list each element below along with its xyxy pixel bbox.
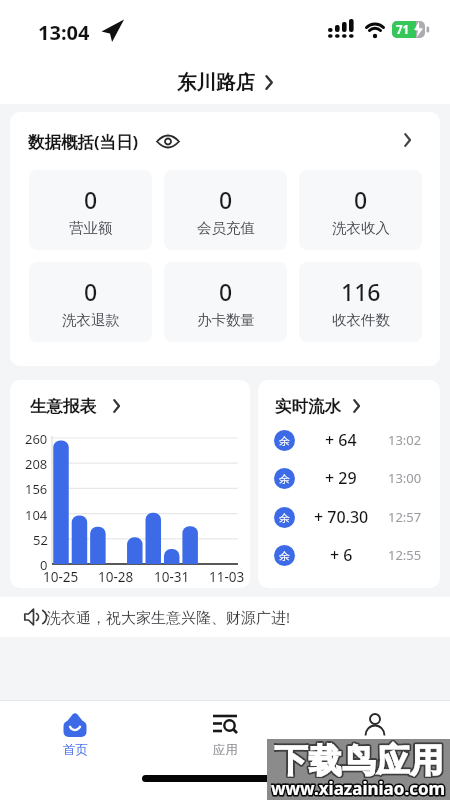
staticText: 洗衣退款 [62, 311, 120, 329]
staticText: 10-28 [98, 568, 134, 586]
button[interactable]: 116 [299, 262, 422, 342]
staticText: 11-03 [209, 568, 245, 586]
staticText: 余 [279, 472, 290, 486]
staticText: 洗衣收入 [332, 219, 390, 237]
staticText: 数据概括(当日) [28, 130, 139, 153]
button[interactable] [258, 380, 440, 588]
staticText: 东川路店 [177, 70, 255, 95]
staticText: 收衣件数 [332, 311, 390, 329]
staticText: www.xiazainiao.com [271, 777, 446, 797]
staticText: 104 [25, 506, 48, 522]
staticText: 应用 [213, 742, 238, 758]
button[interactable] [10, 380, 250, 588]
staticText: 0 [40, 556, 48, 572]
staticText: 52 [33, 531, 48, 547]
staticText: 12:55 [388, 546, 422, 564]
staticText: 12:57 [388, 508, 422, 526]
staticText: 0 [84, 184, 98, 215]
staticText: + 70.30 [314, 506, 369, 528]
staticText: 我的 [363, 742, 388, 758]
staticText: 余 [279, 511, 290, 525]
button[interactable]: 0 [29, 262, 152, 342]
staticText: 156 [25, 480, 48, 496]
button[interactable]: 0 [29, 170, 152, 250]
staticText: + 64 [325, 429, 357, 451]
staticText: 13:02 [388, 431, 422, 449]
staticText: 13:00 [388, 469, 422, 487]
staticText: 0 [354, 184, 368, 215]
staticText: 营业额 [69, 219, 113, 237]
button[interactable]: 我的 [345, 712, 405, 764]
staticText: + 6 [330, 544, 353, 566]
button[interactable]: 0 [299, 170, 422, 250]
button[interactable]: 东川路店 [0, 66, 450, 98]
staticText: 首页 [63, 742, 88, 758]
button[interactable] [398, 131, 416, 149]
button[interactable]: 应用 [195, 712, 255, 764]
staticText: 260 [25, 430, 48, 446]
staticText: 13:04 [38, 19, 90, 46]
staticText: 下载鸟应用 [274, 740, 444, 778]
button[interactable]: 0 [164, 170, 287, 250]
staticText: 10-25 [43, 568, 79, 586]
staticText: 10-31 [154, 568, 190, 586]
button[interactable]: 0 [164, 262, 287, 342]
button[interactable] [0, 597, 450, 637]
staticText: 0 [84, 276, 98, 307]
staticText: 余 [279, 434, 290, 448]
staticText: 116 [341, 276, 381, 307]
staticText: + 29 [325, 467, 357, 489]
staticText: 71 [396, 22, 410, 38]
staticText: www.xiazainiao.com [271, 777, 446, 797]
staticText: 0 [219, 184, 233, 215]
staticText: 余 [279, 549, 290, 563]
staticText: 实时流水 [275, 396, 341, 417]
staticText: 下载鸟应用 [274, 740, 444, 778]
staticText: 生意报表 [30, 396, 96, 417]
staticText: 会员充值 [197, 219, 255, 237]
button[interactable]: 首页 [45, 712, 105, 764]
staticText: 洗衣通，祝大家生意兴隆、财源广进! [46, 607, 291, 627]
staticText: 0 [219, 276, 233, 307]
staticText: 208 [25, 455, 48, 471]
staticText: 办卡数量 [197, 311, 255, 329]
